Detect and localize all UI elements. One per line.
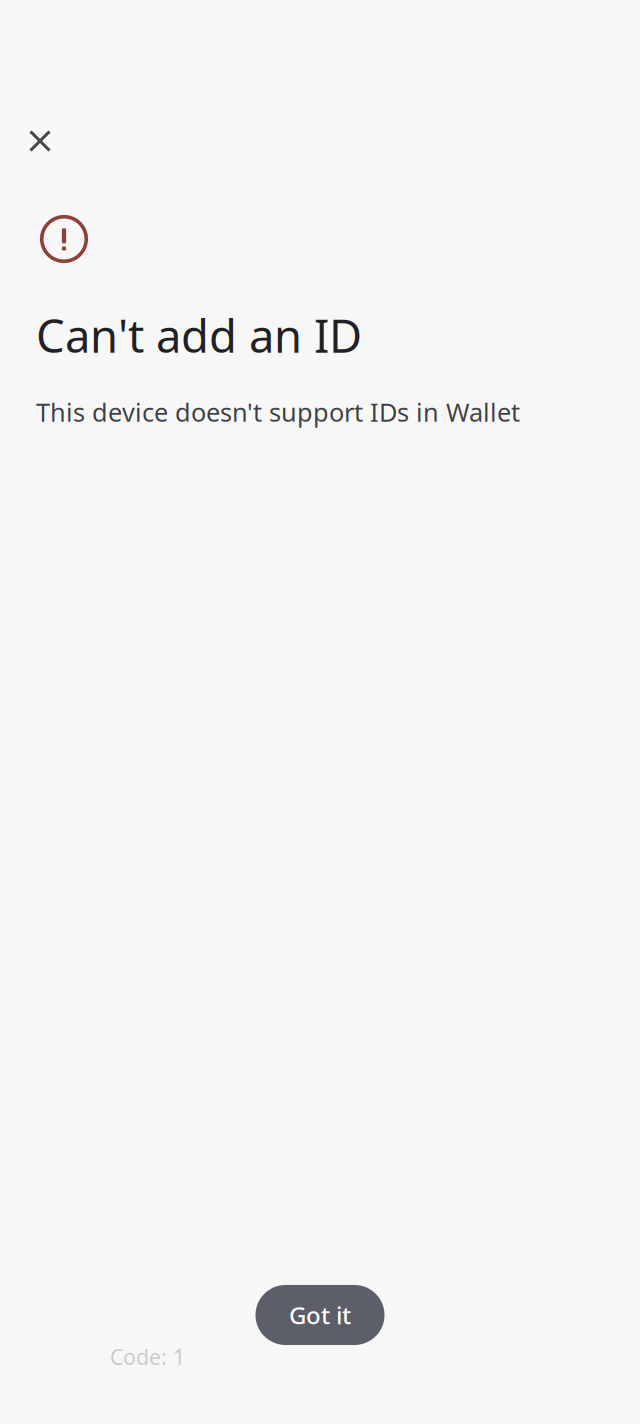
button[interactable]: Got it (255, 1285, 384, 1345)
staticText: Got it (289, 1299, 351, 1331)
button[interactable]: Close (16, 117, 64, 165)
staticText: Can't add an ID (36, 305, 362, 365)
staticText: This device doesn't support IDs in Walle… (36, 395, 520, 429)
staticText: Code: 1 (110, 1343, 185, 1371)
